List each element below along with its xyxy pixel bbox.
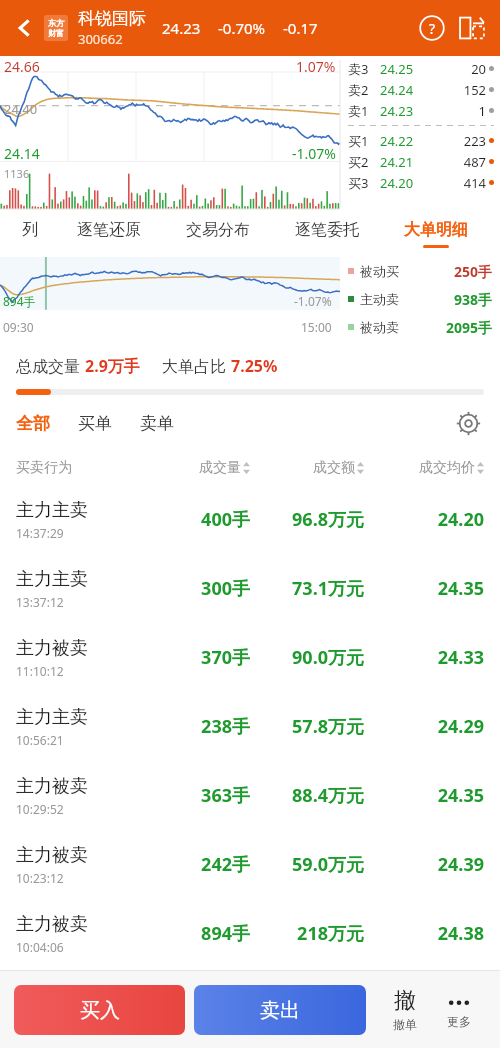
staticText: 24.35 [364, 576, 484, 601]
staticText: 大单明细 [404, 220, 468, 240]
staticText: 15:00 [301, 319, 332, 335]
staticText: 223 [434, 132, 486, 150]
staticText: 24.21 [380, 153, 434, 171]
staticText: 卖3 [348, 60, 380, 78]
staticText: 57.8万元 [250, 714, 364, 739]
staticText: 主力被卖 [16, 637, 88, 660]
button[interactable]: 列 [6, 211, 54, 257]
button[interactable]: 主力被卖 [0, 761, 500, 830]
button[interactable]: 卖单 [140, 413, 174, 434]
button[interactable]: 逐笔还原 [54, 211, 163, 257]
staticText: 10:23:12 [16, 870, 64, 886]
staticText: 成交量 [199, 459, 241, 477]
staticText: 400手 [146, 507, 250, 532]
staticText: 卖出 [260, 998, 300, 1023]
staticText: 894手 [3, 293, 36, 309]
staticText: 13:37:12 [16, 594, 64, 610]
staticText: 买1 [348, 132, 380, 150]
staticText: 363手 [146, 783, 250, 808]
button[interactable]: Help [414, 10, 450, 46]
staticText: 2095手 [399, 318, 492, 337]
staticText: 24.39 [364, 852, 484, 877]
staticText: 10:04:06 [16, 939, 64, 955]
staticText: 主力被卖 [16, 844, 88, 867]
staticText: 主力主卖 [16, 499, 88, 522]
staticText: 24.20 [380, 174, 434, 192]
button[interactable]: 卖出 [194, 985, 366, 1035]
staticText: 主力主卖 [16, 706, 88, 729]
staticText: 主力主卖 [16, 568, 88, 591]
staticText: 24.38 [364, 921, 484, 946]
button[interactable]: 主力被卖 [0, 830, 500, 899]
staticText: -1.07% [292, 144, 336, 163]
staticText: 买卖行为 [16, 459, 146, 477]
staticText: 242手 [146, 852, 250, 877]
staticText: 主力被卖 [16, 775, 88, 798]
staticText: 卖1 [348, 102, 380, 120]
button[interactable]: 买单 [78, 413, 112, 434]
staticText: 24.29 [364, 714, 484, 739]
button[interactable]: 更多 [432, 971, 486, 1048]
staticText: 14:37:29 [16, 525, 64, 541]
staticText: 938手 [399, 290, 492, 309]
staticText: 24.23 [162, 18, 201, 38]
staticText: 20 [434, 60, 486, 78]
staticText: 152 [434, 81, 486, 99]
staticText: 交易分布 [186, 220, 250, 240]
staticText: 买2 [348, 153, 380, 171]
staticText: 11:10:12 [16, 663, 64, 679]
staticText: 24.24 [380, 81, 434, 99]
staticText: 2.9万手 [85, 355, 140, 377]
button[interactable]: 大单明细 [381, 211, 490, 257]
button[interactable]: 交易分布 [163, 211, 272, 257]
button[interactable]: Layout [454, 10, 490, 46]
button[interactable]: 全部 [16, 413, 50, 434]
button[interactable]: 主力被卖 [0, 899, 500, 968]
staticText: 10:56:21 [16, 732, 64, 748]
staticText: -0.70% [218, 18, 266, 38]
staticText: 卖2 [348, 81, 380, 99]
button[interactable]: 主力主卖 [0, 692, 500, 761]
staticText: 24.22 [380, 132, 434, 150]
staticText: 成交均价 [419, 459, 475, 477]
staticText: 88.4万元 [250, 783, 364, 808]
staticText: 414 [434, 174, 486, 192]
button[interactable]: Back [8, 11, 42, 45]
staticText: 10:29:52 [16, 801, 64, 817]
staticText: 撤单 [393, 1017, 417, 1032]
button[interactable]: Settings [452, 407, 484, 439]
button[interactable]: 买入 [14, 985, 185, 1035]
button[interactable]: 主力主卖 [0, 554, 500, 623]
button[interactable]: 撤 [378, 971, 432, 1048]
staticText: 撤 [394, 987, 416, 1015]
staticText: 370手 [146, 645, 250, 670]
staticText: -0.17 [283, 18, 318, 38]
staticText: ? [429, 19, 436, 38]
staticText: 列 [22, 220, 38, 240]
staticText: 科锐国际 [78, 8, 146, 29]
staticText: 250手 [399, 262, 492, 281]
staticText: 逐笔还原 [77, 220, 141, 240]
staticText: 东方 [48, 18, 64, 28]
button[interactable]: 主力主卖 [0, 485, 500, 554]
staticText: 24.23 [380, 102, 434, 120]
staticText: -1.07% [294, 293, 332, 309]
staticText: 24.35 [364, 783, 484, 808]
staticText: 24.14 [4, 144, 40, 163]
staticText: 300662 [78, 30, 123, 48]
staticText: 更多 [447, 1014, 471, 1029]
staticText: 487 [434, 153, 486, 171]
staticText: 24.66 [4, 57, 40, 76]
staticText: 1 [434, 102, 486, 120]
staticText: 被动买 [360, 263, 399, 279]
staticText: 24.33 [364, 645, 484, 670]
staticText: 被动卖 [360, 319, 399, 335]
staticText: 买3 [348, 174, 380, 192]
button[interactable]: 逐笔委托 [272, 211, 381, 257]
staticText: 238手 [146, 714, 250, 739]
staticText: 300手 [146, 576, 250, 601]
button[interactable]: 主力被卖 [0, 623, 500, 692]
staticText: 大单占比 [162, 355, 231, 377]
staticText: 7.25% [231, 355, 278, 377]
staticText: 218万元 [250, 921, 364, 946]
